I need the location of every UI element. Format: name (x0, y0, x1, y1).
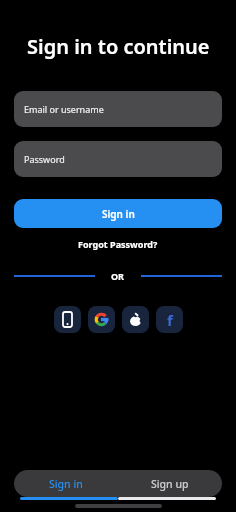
staticText: Sign in (49, 477, 83, 491)
button[interactable]: Sign in (14, 199, 222, 228)
button[interactable] (54, 306, 81, 333)
staticText: Password (24, 153, 65, 165)
staticText: Email or username (24, 103, 104, 115)
staticText: OR (111, 270, 125, 282)
button[interactable]: Sign up (118, 470, 222, 497)
staticText: Sign in to continue (27, 33, 210, 60)
staticText: Sign up (151, 477, 189, 491)
button[interactable]: Forgot Password? (78, 238, 158, 250)
button[interactable] (122, 306, 149, 333)
staticText: Sign in (102, 207, 135, 221)
button[interactable] (88, 306, 115, 333)
button[interactable]: Password (14, 141, 222, 177)
button[interactable]: f (156, 306, 183, 333)
button[interactable]: Email or username (14, 91, 222, 127)
staticText: f (167, 310, 173, 330)
button[interactable]: Sign in (14, 470, 118, 497)
